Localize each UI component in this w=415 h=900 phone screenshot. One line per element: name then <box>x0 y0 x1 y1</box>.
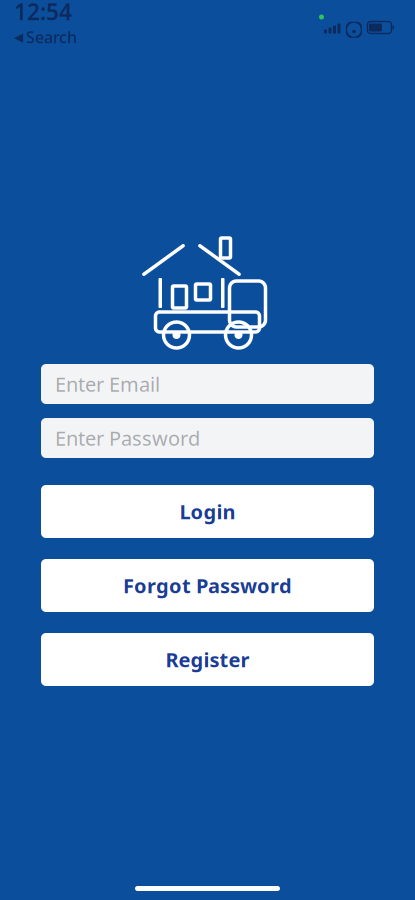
staticText: Login <box>179 498 235 525</box>
staticText: Search <box>26 26 77 48</box>
staticText: Enter Password <box>55 425 200 451</box>
button[interactable]: Forgot Password <box>41 559 374 612</box>
staticText: Register <box>165 646 249 673</box>
button[interactable]: Login <box>41 485 374 538</box>
staticText: ◀ <box>14 30 23 44</box>
staticText: Forgot Password <box>123 572 292 599</box>
button[interactable]: Register <box>41 633 374 686</box>
staticText: 12:54 <box>14 0 72 26</box>
staticText: Enter Email <box>55 371 160 397</box>
